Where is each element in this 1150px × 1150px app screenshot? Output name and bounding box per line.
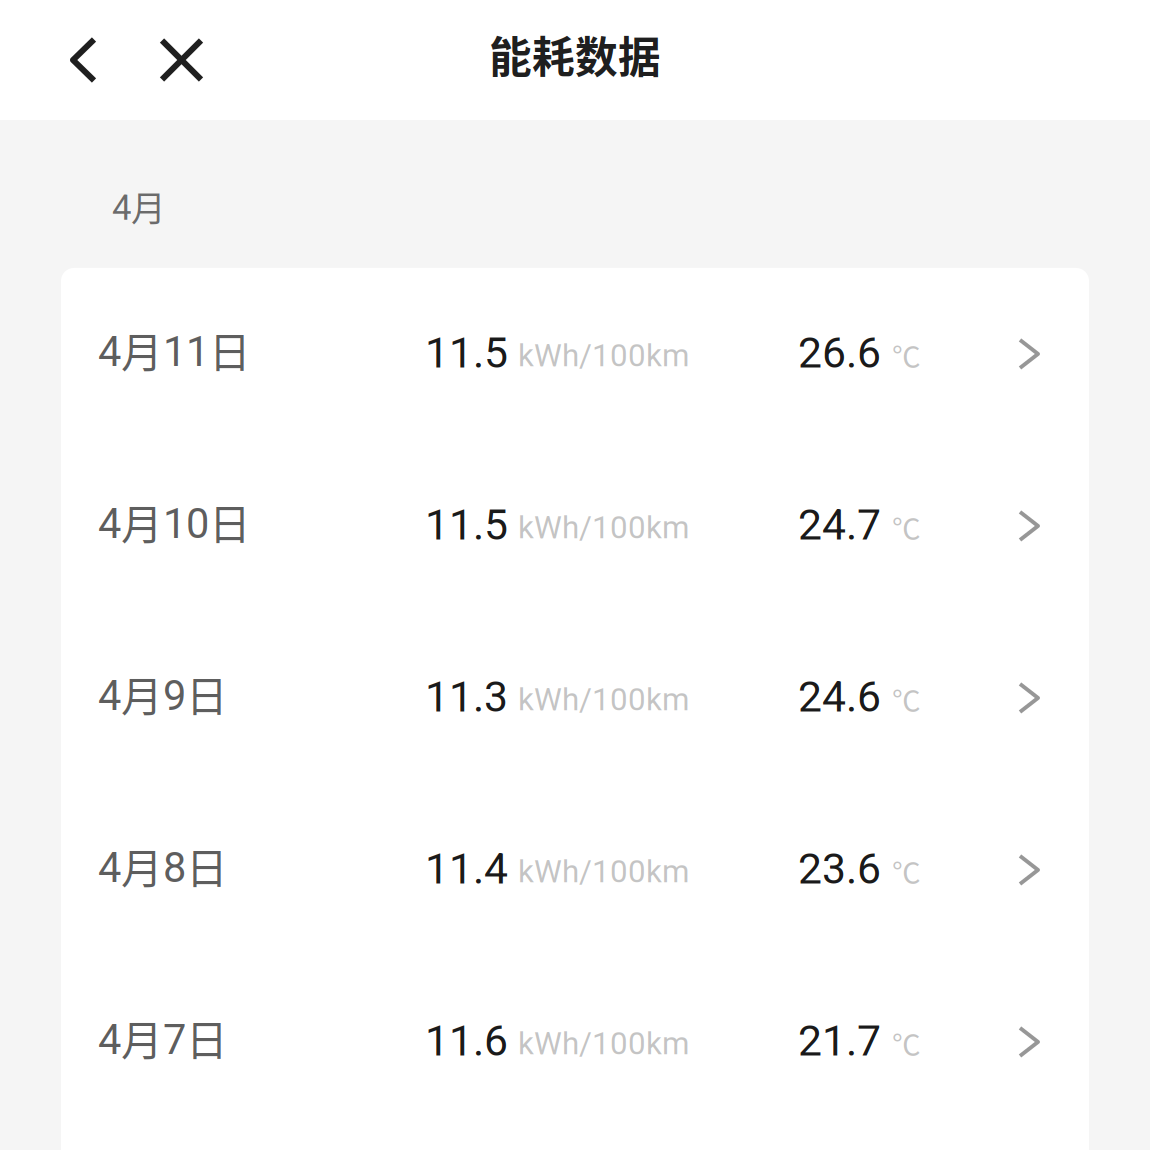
staticText: ℃ (892, 506, 921, 548)
staticText: 24.6 (798, 672, 881, 722)
button[interactable]: 4月8日 (61, 784, 1089, 956)
staticText: 4月7日 (98, 1009, 228, 1067)
staticText: kWh/100km (518, 853, 689, 890)
staticText: 11.3 (425, 672, 508, 722)
staticText: ℃ (892, 850, 921, 892)
button[interactable]: 4月7日 (61, 956, 1089, 1128)
button[interactable]: Close (116, 0, 227, 120)
staticText: ℃ (892, 1022, 921, 1064)
staticText: 4月10日 (98, 493, 251, 551)
button[interactable]: 4月11日 (61, 268, 1089, 440)
button[interactable]: 4月9日 (61, 612, 1089, 784)
button[interactable]: Back (51, 0, 116, 120)
staticText: kWh/100km (518, 337, 689, 374)
staticText: 23.6 (798, 844, 881, 894)
staticText: 4月 (112, 182, 166, 231)
staticText: 4月9日 (98, 665, 228, 723)
staticText: 11.5 (425, 328, 508, 378)
staticText: 11.5 (425, 500, 508, 550)
staticText: 26.6 (798, 328, 881, 378)
staticText: kWh/100km (518, 1025, 689, 1062)
staticText: 11.4 (425, 844, 508, 894)
staticText: kWh/100km (518, 509, 689, 546)
staticText: kWh/100km (518, 681, 689, 718)
staticText: 24.7 (798, 500, 881, 550)
staticText: 4月8日 (98, 837, 228, 895)
staticText: 11.6 (425, 1016, 508, 1066)
button[interactable]: 4月10日 (61, 440, 1089, 612)
staticText: 能耗数据 (489, 24, 661, 85)
staticText: 4月11日 (98, 321, 251, 379)
staticText: ℃ (892, 678, 921, 720)
staticText: ℃ (892, 334, 921, 376)
staticText: 21.7 (798, 1016, 881, 1066)
